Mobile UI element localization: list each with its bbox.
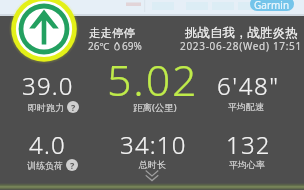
staticText: 训练负荷 bbox=[27, 160, 63, 171]
staticText: ? bbox=[70, 159, 75, 171]
button[interactable]: 132 bbox=[188, 128, 304, 161]
staticText: 132 bbox=[226, 128, 271, 161]
staticText: 挑战自我，战胜炎热 bbox=[185, 25, 298, 41]
staticText: Garmin bbox=[254, 0, 290, 11]
button[interactable]: 6'48" bbox=[188, 69, 304, 102]
staticText: 4.0 bbox=[29, 128, 66, 161]
staticText: 6'48" bbox=[217, 69, 280, 102]
staticText: 即时跑力 bbox=[28, 102, 64, 113]
staticText: 距离(公里) bbox=[133, 101, 177, 114]
button[interactable]: Expand details bbox=[142, 168, 162, 184]
button[interactable]: Help bbox=[67, 101, 79, 113]
staticText: 走走停停 bbox=[89, 26, 135, 40]
staticText: 总时长 bbox=[139, 159, 166, 170]
staticText: ? bbox=[71, 101, 76, 113]
button[interactable]: 34:10 bbox=[93, 128, 213, 161]
staticText: 2023-06-28(Wed) 17:51 bbox=[180, 39, 302, 53]
other: Activity type bbox=[0, 0, 104, 89]
button[interactable]: Help bbox=[66, 159, 78, 171]
button[interactable]: 5.02 bbox=[93, 50, 213, 109]
staticText: 39.0 bbox=[22, 69, 74, 102]
staticText: 平均心率 bbox=[229, 159, 265, 170]
staticText: 平均配速 bbox=[228, 101, 264, 112]
staticText: 34:10 bbox=[120, 128, 187, 161]
staticText: 69% bbox=[122, 39, 142, 53]
button[interactable]: 39.0 bbox=[0, 69, 108, 102]
staticText: 26℃ bbox=[88, 39, 110, 53]
button[interactable]: Garmin bbox=[250, 0, 294, 11]
staticText: 5.02 bbox=[107, 50, 199, 109]
button[interactable]: 4.0 bbox=[0, 128, 107, 161]
